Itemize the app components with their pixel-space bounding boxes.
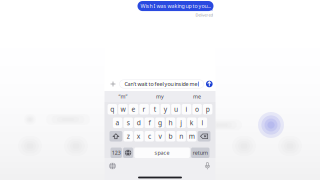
button[interactable]: Switch keyboard: [108, 161, 117, 170]
button[interactable]: t: [150, 104, 159, 114]
button[interactable]: v: [155, 131, 165, 141]
staticText: q: [110, 105, 114, 114]
button[interactable]: Emoji keyboard: [123, 147, 133, 158]
button[interactable]: h: [166, 117, 175, 128]
staticText: 123: [112, 149, 121, 156]
button[interactable]: space: [134, 147, 190, 158]
staticText: o: [195, 105, 199, 114]
button[interactable]: “m”: [104, 91, 141, 102]
button[interactable]: me: [178, 91, 215, 102]
staticText: s: [127, 118, 130, 127]
button[interactable]: f: [145, 117, 154, 128]
button[interactable]: u: [171, 104, 181, 114]
staticText: g: [158, 118, 162, 127]
button[interactable]: p: [203, 104, 212, 114]
staticText: “m”: [118, 93, 127, 100]
staticText: Can't wait to feel you inside me: [124, 80, 197, 88]
button[interactable]: return: [191, 147, 209, 158]
staticText: my: [156, 93, 164, 100]
staticText: c: [148, 132, 151, 141]
button[interactable]: w: [118, 104, 128, 114]
button[interactable]: o: [192, 104, 202, 114]
staticText: Wish I was waking up to you...: [140, 2, 210, 10]
button[interactable]: r: [139, 104, 149, 114]
staticText: b: [169, 132, 173, 141]
staticText: space: [155, 149, 170, 156]
staticText: k: [190, 118, 194, 127]
button[interactable]: d: [134, 117, 143, 128]
button[interactable]: y: [161, 104, 170, 114]
button[interactable]: Delete: [198, 131, 210, 141]
button[interactable]: n: [176, 131, 186, 141]
button[interactable]: Send: [205, 80, 213, 88]
staticText: p: [206, 105, 210, 114]
staticText: i: [185, 105, 187, 114]
staticText: f: [148, 118, 150, 127]
staticText: z: [127, 132, 130, 141]
staticText: y: [164, 105, 167, 114]
button[interactable]: j: [176, 117, 186, 128]
button[interactable]: x: [134, 131, 143, 141]
button[interactable]: k: [187, 117, 196, 128]
staticText: a: [116, 118, 120, 127]
button[interactable]: s: [123, 117, 133, 128]
button[interactable]: Dictate: [203, 161, 212, 170]
button[interactable]: z: [123, 131, 133, 141]
staticText: d: [137, 118, 141, 127]
button[interactable]: 123: [110, 147, 122, 158]
staticText: l: [201, 118, 203, 127]
staticText: me: [193, 93, 201, 100]
button[interactable]: Shift: [109, 131, 122, 141]
button[interactable]: m: [187, 131, 196, 141]
button[interactable]: my: [141, 91, 178, 102]
staticText: t: [154, 105, 156, 114]
button[interactable]: l: [198, 117, 207, 128]
staticText: e: [131, 105, 135, 114]
button[interactable]: Can't wait to feel you inside me: [116, 80, 204, 88]
staticText: Delivered: [195, 12, 212, 18]
staticText: x: [137, 132, 141, 141]
staticText: v: [158, 132, 161, 141]
staticText: r: [143, 105, 146, 114]
staticText: m: [189, 132, 195, 141]
button[interactable]: a: [113, 117, 122, 128]
button[interactable]: c: [145, 131, 154, 141]
button[interactable]: q: [108, 104, 117, 114]
button[interactable]: i: [182, 104, 191, 114]
staticText: w: [120, 105, 125, 114]
staticText: j: [180, 118, 182, 127]
button[interactable]: g: [155, 117, 165, 128]
button[interactable]: e: [129, 104, 138, 114]
staticText: u: [174, 105, 178, 114]
button[interactable]: Add attachment: [109, 80, 116, 87]
staticText: h: [169, 118, 173, 127]
button[interactable]: b: [166, 131, 175, 141]
staticText: return: [193, 149, 208, 156]
staticText: n: [179, 132, 183, 141]
